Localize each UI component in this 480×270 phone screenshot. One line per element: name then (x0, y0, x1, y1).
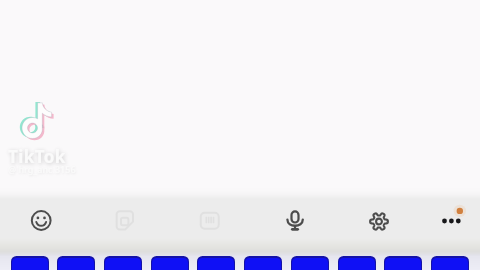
button[interactable]: Key p (431, 256, 469, 270)
button[interactable]: Key r (151, 256, 189, 270)
button[interactable]: Key u (291, 256, 329, 270)
button[interactable]: GIF (197, 210, 223, 236)
button[interactable]: Key i (338, 256, 376, 270)
button[interactable]: Key e (104, 256, 142, 270)
button[interactable]: Key q (11, 256, 49, 270)
button[interactable]: More options (436, 203, 468, 235)
button[interactable]: Key y (244, 256, 282, 270)
button[interactable]: Emoji (30, 209, 56, 235)
button[interactable]: Voice input (282, 208, 308, 234)
button[interactable]: Settings (366, 209, 392, 235)
staticText: TikTok (8, 145, 66, 168)
button[interactable]: Key w (57, 256, 95, 270)
button[interactable]: Key t (197, 256, 235, 270)
staticText: @ hrg_anc.3156 (8, 163, 76, 175)
button[interactable]: Key o (384, 256, 422, 270)
button[interactable]: Stickers (112, 210, 138, 236)
